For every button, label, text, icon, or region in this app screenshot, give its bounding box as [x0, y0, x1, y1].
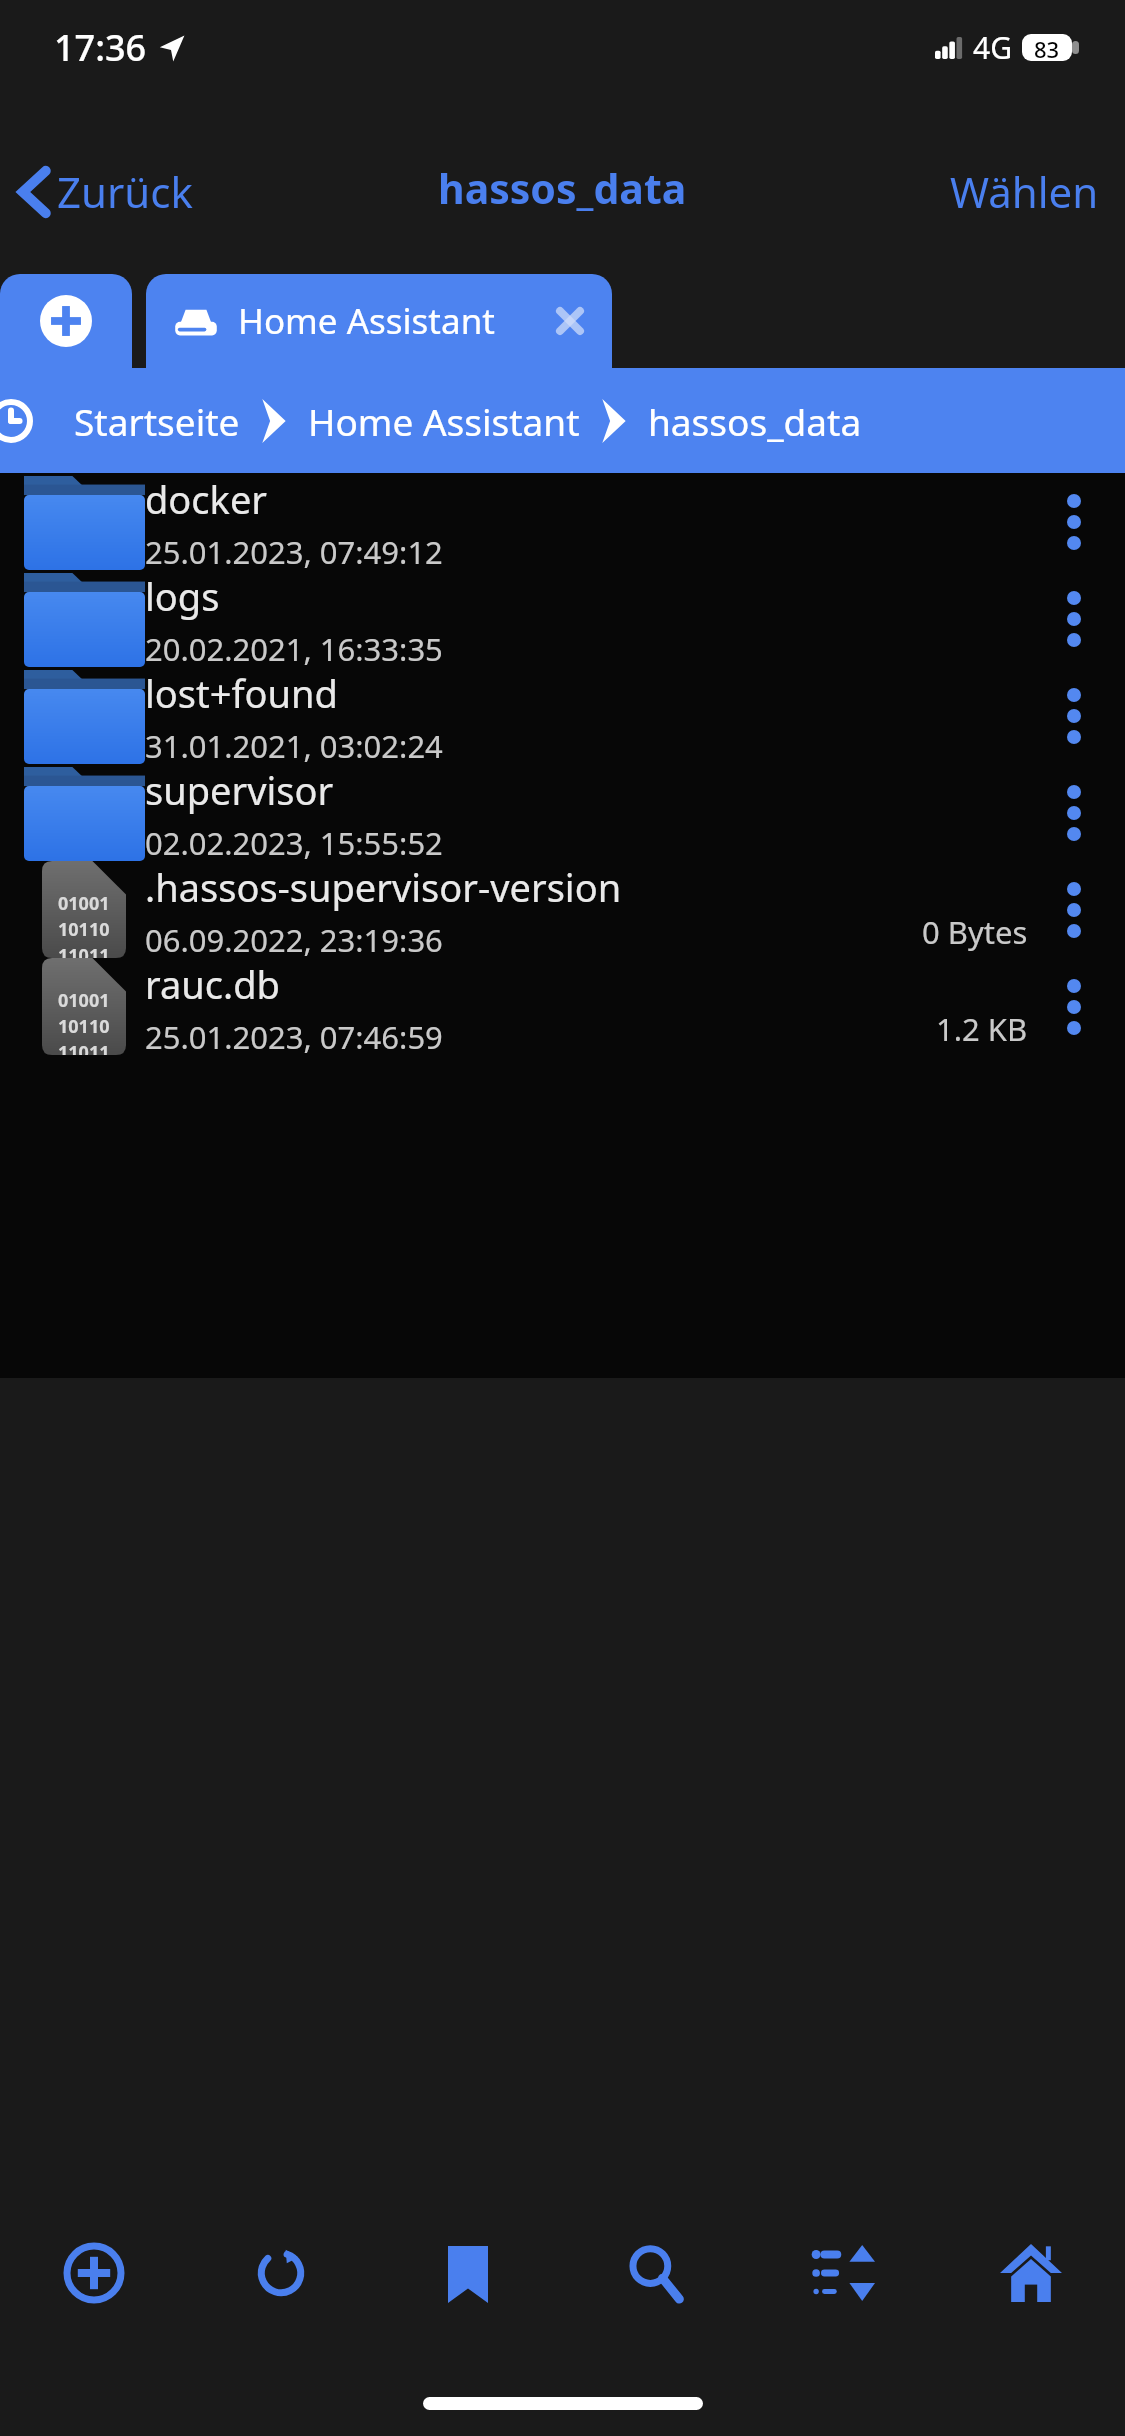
staticText: 17:36 — [54, 23, 147, 72]
staticText: 01001 — [58, 891, 110, 916]
button[interactable]: Zurück — [10, 155, 203, 228]
staticText: rauc.db — [145, 958, 280, 1010]
staticText: 83 — [1034, 34, 1060, 61]
staticText: 25.01.2023, 07:46:59 — [145, 1016, 443, 1055]
staticText: 01001 — [58, 988, 110, 1013]
button[interactable]: Mehr Optionen — [1028, 473, 1120, 570]
button[interactable]: 01001 — [5, 958, 1120, 1055]
staticText: Home Assistant — [238, 297, 495, 345]
staticText: 11011 — [58, 943, 110, 958]
staticText: 11011 — [58, 1040, 110, 1055]
button[interactable]: docker — [5, 473, 1120, 570]
button[interactable]: logs — [5, 570, 1120, 667]
button[interactable]: Suchen — [561, 2200, 749, 2345]
staticText: 25.01.2023, 07:49:12 — [145, 531, 443, 570]
staticText: lost+found — [145, 667, 338, 719]
button[interactable]: Home Assistant — [304, 388, 584, 454]
button[interactable]: Aktualisieren — [187, 2200, 374, 2345]
staticText: supervisor — [145, 764, 334, 816]
staticText: 4G — [973, 27, 1012, 68]
button[interactable]: Mehr Optionen — [1028, 958, 1120, 1055]
button[interactable]: Neu — [0, 2200, 187, 2345]
button[interactable]: Mehr Optionen — [1028, 861, 1120, 958]
staticText: 31.01.2021, 03:02:24 — [145, 725, 443, 764]
staticText: 20.02.2021, 16:33:35 — [145, 628, 443, 667]
button[interactable]: Mehr Optionen — [1028, 667, 1120, 764]
button[interactable]: hassos_data — [644, 388, 866, 454]
staticText: 10110 — [58, 1014, 110, 1039]
button[interactable]: Sortieren — [749, 2200, 937, 2345]
button[interactable]: Home Assistant — [146, 274, 612, 368]
staticText: logs — [145, 570, 220, 622]
button[interactable]: 01001 — [5, 861, 1120, 958]
staticText: 0 Bytes — [922, 911, 1028, 953]
button[interactable]: lost+found — [5, 667, 1120, 764]
button[interactable]: Tab schließen — [546, 297, 594, 345]
button[interactable]: Mehr Optionen — [1028, 570, 1120, 667]
button[interactable]: Mehr Optionen — [1028, 764, 1120, 861]
staticText: Zurück — [57, 163, 193, 220]
staticText: 02.02.2023, 15:55:52 — [145, 822, 443, 861]
button[interactable]: supervisor — [5, 764, 1120, 861]
staticText: docker — [145, 473, 268, 525]
staticText: 1.2 KB — [936, 1008, 1028, 1050]
button[interactable]: Startseite — [937, 2200, 1125, 2345]
button[interactable]: Neuer Tab — [0, 274, 132, 368]
button[interactable]: Verlauf — [0, 396, 36, 446]
staticText: .hassos-supervisor-version — [145, 861, 622, 913]
button[interactable]: Startseite — [70, 388, 244, 454]
staticText: hassos_data — [438, 160, 687, 216]
button[interactable]: Lesezeichen — [374, 2200, 561, 2345]
staticText: 10110 — [58, 917, 110, 942]
staticText: 06.09.2022, 23:19:36 — [145, 919, 443, 958]
button[interactable]: Wählen — [942, 155, 1107, 228]
